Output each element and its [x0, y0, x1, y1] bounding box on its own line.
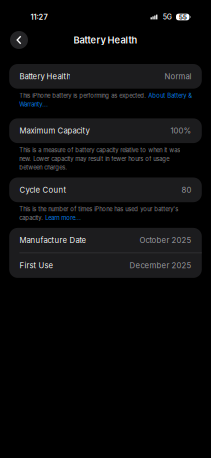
staticText: First Use — [19, 261, 53, 270]
button[interactable]: Maximum Capacity — [9, 118, 202, 143]
staticText: Battery Health — [73, 34, 137, 46]
staticText: 80 — [182, 185, 192, 195]
button[interactable]: Back — [10, 31, 28, 49]
staticText: Maximum Capacity — [19, 126, 89, 135]
staticText: Normal — [165, 72, 192, 81]
button[interactable]: First Use — [9, 253, 202, 278]
staticText: This iPhone battery is performing as exp… — [19, 92, 192, 108]
staticText: Manufacture Date — [19, 236, 86, 245]
staticText: 55 — [179, 13, 187, 21]
staticText: Battery Health — [19, 72, 71, 81]
staticText: Cycle Count — [19, 185, 66, 195]
button[interactable]: Battery Health — [9, 64, 202, 89]
staticText: October 2025 — [140, 236, 192, 245]
button[interactable]: Manufacture Date — [9, 228, 202, 253]
staticText: This is the number of times iPhone has u… — [19, 206, 178, 221]
staticText: This is a measure of battery capacity re… — [19, 146, 180, 171]
staticText: 100% — [171, 126, 192, 135]
staticText: December 2025 — [130, 261, 192, 270]
staticText: 11:27 — [30, 12, 47, 21]
staticText: 5G — [163, 13, 172, 21]
button[interactable]: Cycle Count — [9, 177, 202, 202]
